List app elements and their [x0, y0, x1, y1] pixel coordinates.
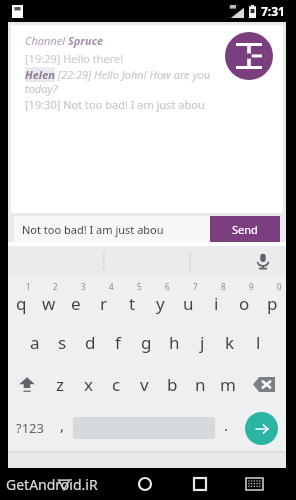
staticText: , [60, 415, 65, 435]
staticText: k [225, 331, 235, 354]
button[interactable]: Back [62, 468, 117, 500]
staticText: j [200, 331, 205, 354]
staticText: f [115, 331, 121, 354]
staticText: 4 [109, 281, 114, 292]
staticText: v [140, 373, 149, 396]
button[interactable]: a [21, 322, 48, 363]
staticText: g [141, 331, 152, 354]
button[interactable]: b [158, 363, 186, 405]
button[interactable]: Channel avatar [225, 32, 273, 80]
staticText: Channel Spruce [25, 33, 104, 48]
button[interactable]: c [102, 363, 130, 405]
button[interactable]: h [160, 322, 188, 363]
button[interactable]: 4 [90, 276, 118, 322]
staticText: 3 [81, 281, 86, 292]
button[interactable]: Send [210, 216, 280, 242]
staticText: o [239, 292, 250, 315]
button[interactable]: 5 [118, 276, 146, 322]
staticText: Helen [22:29] Hello John! How are you to… [25, 67, 225, 96]
staticText: i [214, 292, 219, 315]
button[interactable]: Hide keyboard [227, 468, 282, 500]
staticText: h [169, 331, 180, 354]
button[interactable]: Voice input [254, 252, 272, 270]
button[interactable]: Home [117, 468, 172, 500]
staticText: y [156, 292, 165, 315]
staticText: a [30, 331, 40, 354]
button[interactable]: g [132, 322, 160, 363]
button[interactable]: m [214, 363, 242, 405]
button[interactable]: z [46, 363, 74, 405]
staticText: 7 [193, 281, 198, 292]
staticText: r [100, 292, 108, 315]
staticText: 7:31 [261, 3, 285, 19]
button[interactable]: Send [245, 412, 278, 445]
staticText: Send [232, 222, 258, 237]
staticText: GetAndroid.iR [6, 475, 98, 494]
staticText: 2 [53, 281, 58, 292]
staticText: 0 [277, 281, 282, 292]
staticText: b [167, 373, 178, 396]
staticText: d [85, 331, 96, 354]
button[interactable]: 3 [62, 276, 90, 322]
staticText: c [112, 373, 121, 396]
button[interactable]: ?123 [8, 405, 51, 451]
staticText: u [183, 292, 194, 315]
staticText: [19:29] Hello there! [25, 51, 124, 66]
staticText: 9 [249, 281, 254, 292]
button[interactable]: d [76, 322, 104, 363]
button[interactable]: 2 [35, 276, 62, 322]
button[interactable]: k [216, 322, 244, 363]
staticText: 5 [137, 281, 142, 292]
staticText: e [71, 292, 81, 315]
button[interactable]: Recents [172, 468, 227, 500]
staticText: t [129, 292, 136, 315]
staticText: q [16, 292, 27, 315]
staticText: m [220, 373, 236, 396]
staticText: 8 [221, 281, 226, 292]
staticText: p [267, 292, 278, 315]
button[interactable]: . [215, 405, 237, 451]
button[interactable]: Backspace [242, 363, 286, 405]
button[interactable]: 6 [146, 276, 174, 322]
button[interactable]: Shift [8, 363, 46, 405]
staticText: ?123 [16, 419, 44, 437]
button[interactable]: Not too bad! I am just abou [14, 216, 210, 242]
button[interactable]: , [51, 405, 73, 451]
button[interactable]: l [244, 322, 272, 363]
staticText: . [224, 415, 229, 435]
staticText: w [42, 292, 56, 315]
staticText: l [256, 331, 261, 354]
button[interactable]: v [130, 363, 158, 405]
button[interactable]: 9 [230, 276, 258, 322]
button[interactable]: 0 [258, 276, 286, 322]
button[interactable]: x [74, 363, 102, 405]
staticText: x [84, 373, 93, 396]
staticText: z [56, 373, 64, 396]
staticText: Not too bad! I am just abou [22, 222, 164, 237]
button[interactable]: j [188, 322, 216, 363]
staticText: [19:30] Not too bad! I am just abou [25, 97, 205, 112]
button[interactable]: f [104, 322, 132, 363]
staticText: n [195, 373, 206, 396]
button[interactable]: 7 [174, 276, 202, 322]
staticText: s [58, 331, 67, 354]
button[interactable]: 8 [202, 276, 230, 322]
button[interactable]: s [48, 322, 76, 363]
button[interactable]: n [186, 363, 214, 405]
button[interactable]: 1 [8, 276, 35, 322]
staticText: 6 [165, 281, 170, 292]
staticText: 1 [26, 281, 31, 292]
